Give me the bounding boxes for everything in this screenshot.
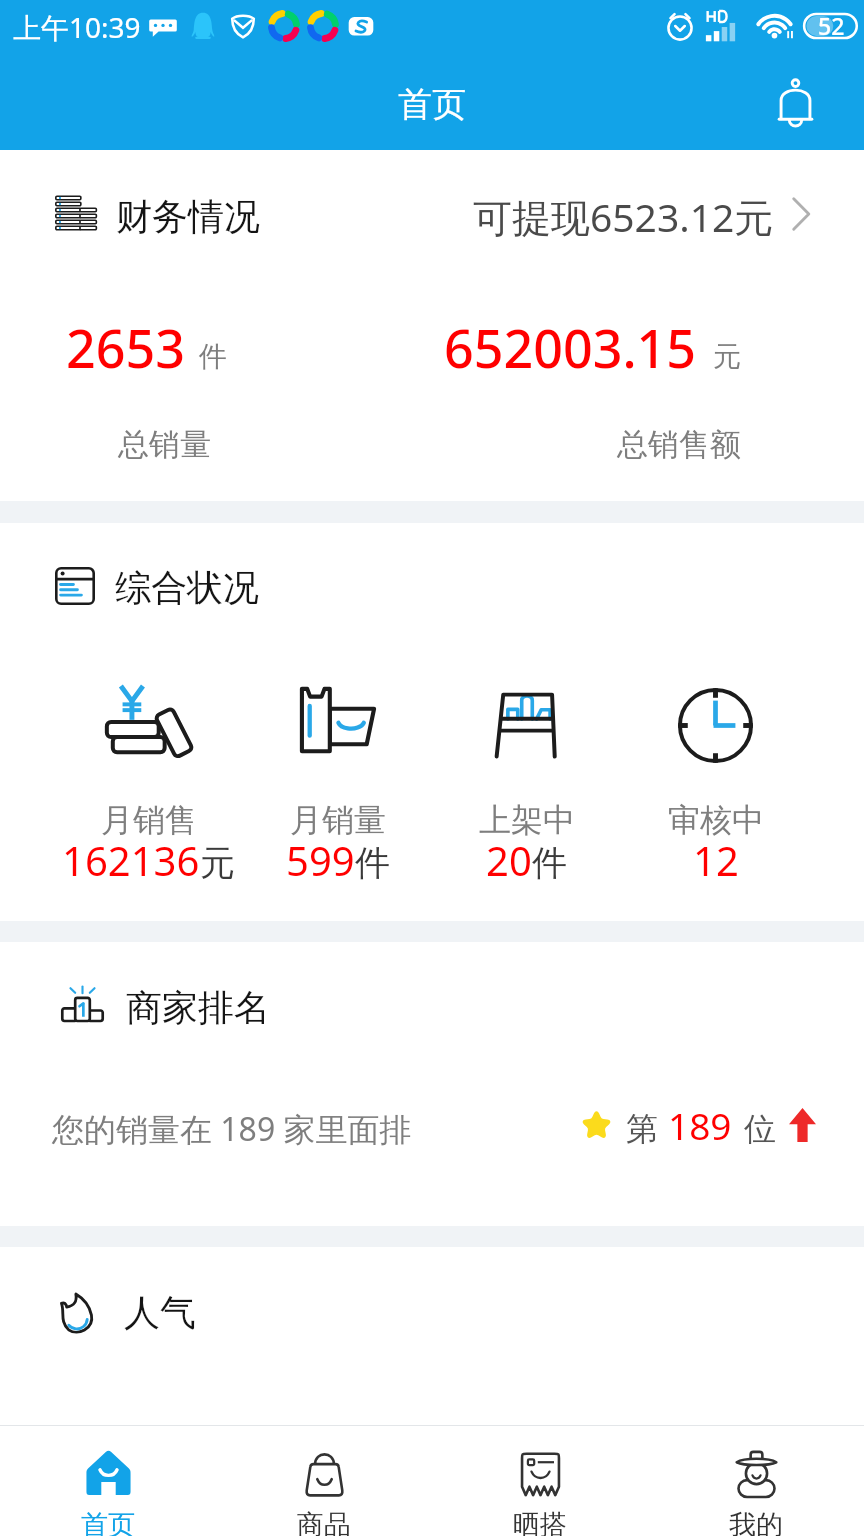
button[interactable]: 商品 <box>216 1426 432 1536</box>
staticText: 我的 <box>729 1508 783 1536</box>
staticText: 上午10:39 <box>13 8 141 46</box>
button[interactable]: 月销量 <box>243 686 432 894</box>
staticText: 52 <box>818 10 845 40</box>
staticText: 189 <box>668 1100 732 1150</box>
button[interactable]: 首页 <box>0 1426 216 1536</box>
staticText: 件 <box>355 841 390 885</box>
staticText: 晒搭 <box>513 1508 567 1536</box>
staticText: 件 <box>199 339 227 374</box>
button[interactable]: Notifications <box>760 68 830 138</box>
staticText: 商品 <box>297 1508 351 1536</box>
staticText: 件 <box>532 841 567 885</box>
staticText: 月销量 <box>290 800 386 840</box>
staticText: 162136 <box>62 833 200 887</box>
staticText: 2653 <box>66 312 185 383</box>
staticText: 总销量 <box>118 425 211 464</box>
staticText: 位 <box>744 1109 776 1149</box>
staticText: 20 <box>486 833 532 887</box>
staticText: 元 <box>200 841 235 885</box>
staticText: 上架中 <box>479 800 575 840</box>
button[interactable]: 晒搭 <box>432 1426 648 1536</box>
staticText: 599 <box>286 833 355 887</box>
staticText: 12 <box>693 833 739 887</box>
button[interactable]: 财务情况 <box>0 165 864 261</box>
staticText: 商家排名 <box>126 985 270 1030</box>
staticText: 财务情况 <box>116 194 260 239</box>
button[interactable]: 上架中 <box>432 686 621 894</box>
button[interactable]: 我的 <box>648 1426 864 1536</box>
staticText: 您的销量在 189 家里面排 <box>52 1107 412 1151</box>
staticText: 652003.15 <box>444 312 697 383</box>
staticText: 首页 <box>81 1508 135 1536</box>
staticText: 综合状况 <box>115 565 259 610</box>
button[interactable]: 审核中 <box>621 686 810 894</box>
button[interactable]: 您的销量在 189 家里面排 <box>0 1082 864 1174</box>
staticText: 审核中 <box>668 800 764 840</box>
staticText: 第 <box>626 1109 658 1149</box>
staticText: 元 <box>713 339 741 374</box>
staticText: 首页 <box>398 83 466 126</box>
staticText: 可提现6523.12元 <box>473 190 774 243</box>
button[interactable]: 月销售 <box>54 686 243 894</box>
staticText: 总销售额 <box>617 425 741 464</box>
staticText: 月销售 <box>101 800 197 840</box>
staticText: 人气 <box>124 1290 196 1335</box>
